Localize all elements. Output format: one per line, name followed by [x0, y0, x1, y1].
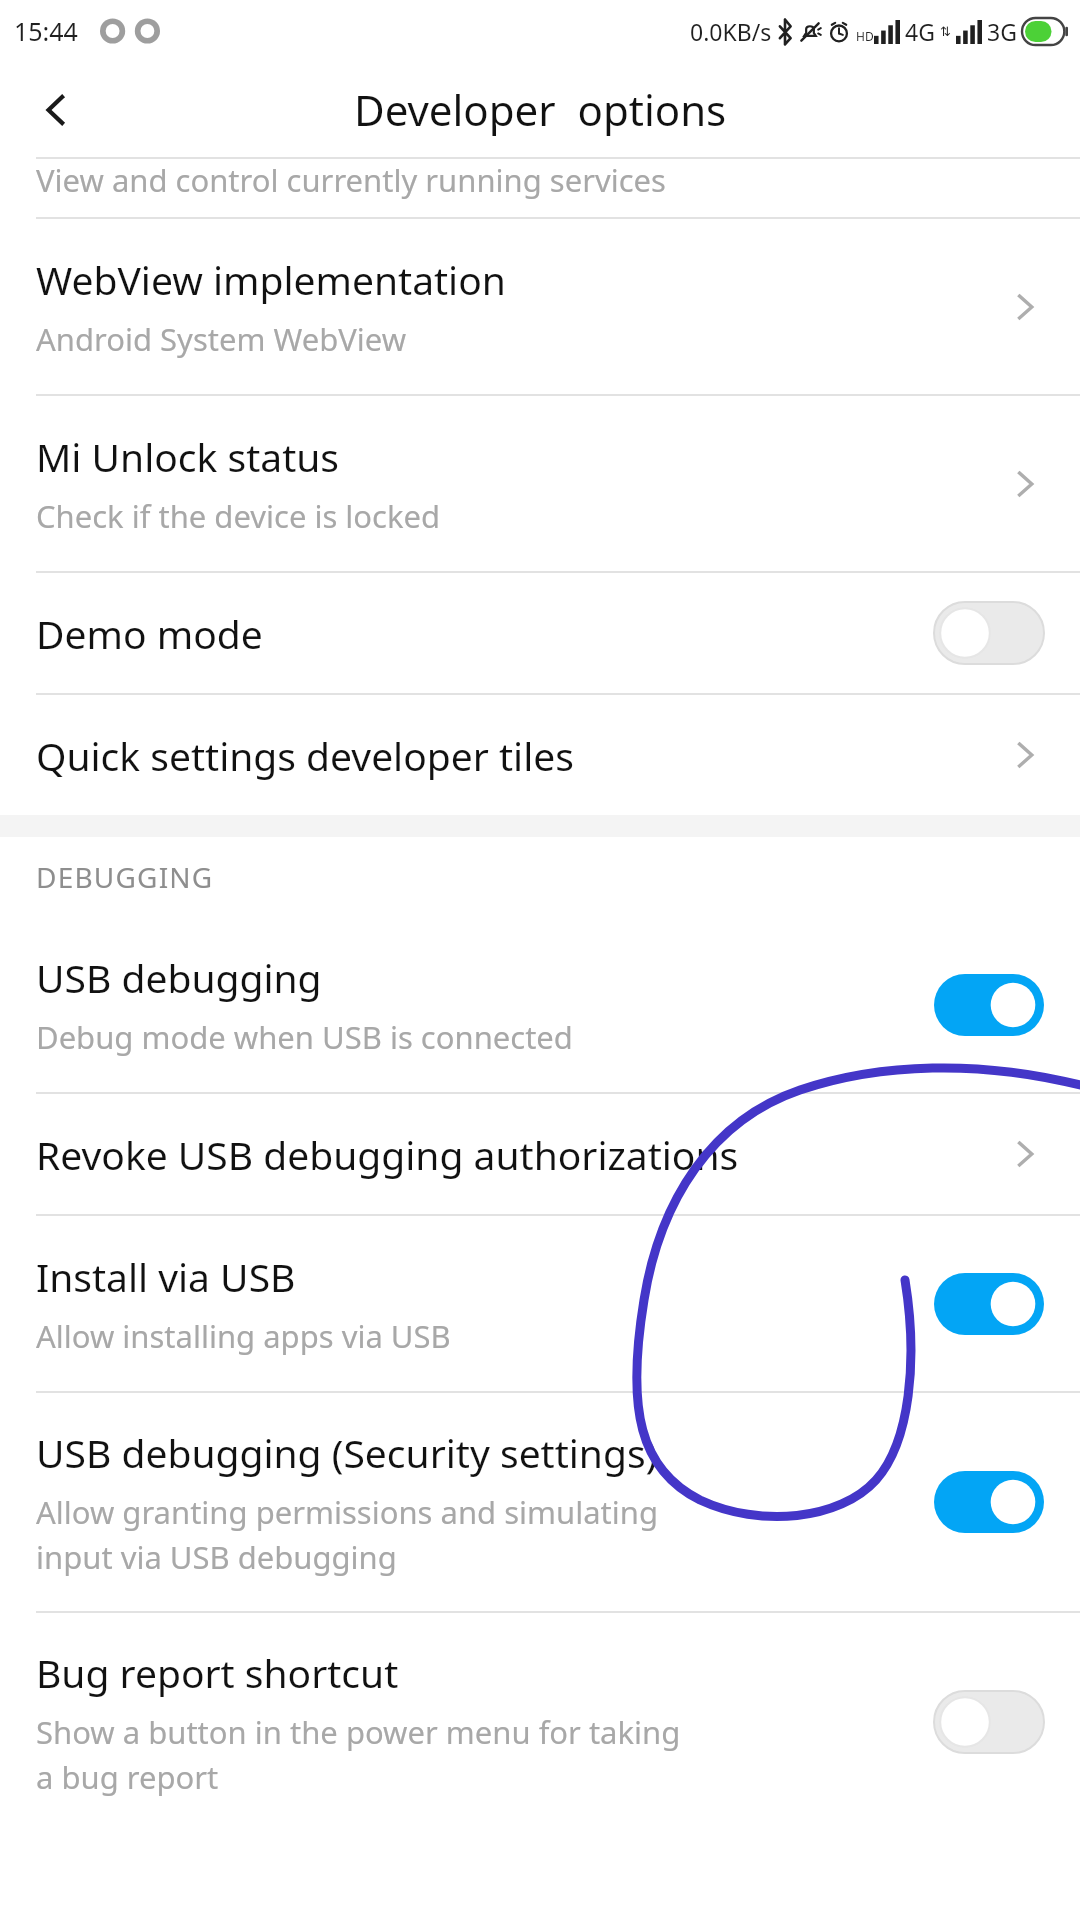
button[interactable]: USB debugging — [0, 917, 1080, 1092]
staticText: 0.0KB/s — [690, 16, 772, 47]
staticText: 15:44 — [14, 14, 78, 48]
staticText: Developer options — [354, 81, 727, 138]
staticText: USB debugging (Security settings) — [36, 1426, 658, 1479]
staticText: Revoke USB debugging authorizations — [36, 1128, 739, 1181]
staticText: Check if the device is locked — [36, 495, 441, 537]
button[interactable]: WebView implementation — [0, 219, 1080, 394]
staticText: View and control currently running servi… — [36, 159, 666, 201]
staticText: 3G — [987, 16, 1017, 47]
staticText: Mi Unlock status — [36, 430, 340, 483]
staticText: ⇅ — [940, 24, 951, 39]
staticText: USB debugging — [36, 951, 322, 1004]
staticText: WebView implementation — [36, 253, 506, 306]
button[interactable]: Install via USB — [0, 1216, 1080, 1391]
button[interactable]: Off — [934, 1691, 1044, 1753]
button[interactable]: Demo mode — [0, 573, 1080, 693]
button[interactable]: Quick settings developer tiles — [0, 695, 1080, 815]
button[interactable]: On — [934, 1273, 1044, 1335]
button[interactable]: Revoke USB debugging authorizations — [0, 1094, 1080, 1214]
button[interactable]: On — [934, 1471, 1044, 1533]
button[interactable]: Bug report shortcut — [0, 1613, 1080, 1831]
staticText: Demo mode — [36, 607, 263, 660]
staticText: Allow installing apps via USB — [36, 1315, 451, 1357]
staticText: Show a button in the power menu for taki… — [36, 1711, 681, 1798]
button[interactable]: Mi Unlock status — [0, 396, 1080, 571]
staticText: 4G — [905, 16, 935, 47]
button[interactable]: Back — [24, 78, 88, 142]
staticText: Android System WebView — [36, 318, 407, 360]
staticText: Quick settings developer tiles — [36, 729, 574, 782]
staticText: HD — [856, 28, 874, 44]
staticText: Bug report shortcut — [36, 1646, 399, 1699]
button[interactable]: Off — [934, 602, 1044, 664]
staticText: Install via USB — [36, 1250, 296, 1303]
staticText: Allow granting permissions and simulatin… — [36, 1491, 658, 1578]
button[interactable]: On — [934, 974, 1044, 1036]
staticText: Debug mode when USB is connected — [36, 1016, 573, 1058]
staticText: DEBUGGING — [36, 858, 214, 896]
button[interactable]: USB debugging (Security settings) — [0, 1393, 1080, 1611]
